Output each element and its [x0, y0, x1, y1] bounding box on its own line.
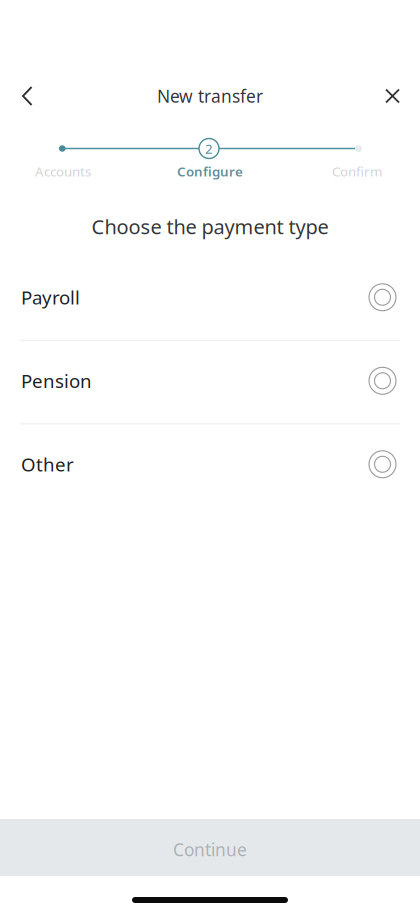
button[interactable]: Back: [0, 74, 45, 118]
button[interactable]: Continue: [0, 819, 420, 876]
staticText: New transfer: [157, 84, 263, 107]
staticText: Continue: [173, 838, 247, 861]
button[interactable]: Other: [0, 421, 420, 504]
staticText: Pension: [21, 368, 92, 393]
staticText: Confirm: [332, 162, 382, 180]
staticText: Configure: [177, 162, 243, 180]
staticText: Accounts: [35, 162, 91, 180]
staticText: Payroll: [21, 285, 80, 310]
button[interactable]: Payroll: [0, 254, 420, 337]
staticText: Other: [21, 452, 74, 477]
staticText: Choose the payment type: [91, 213, 328, 240]
button[interactable]: Pension: [0, 337, 420, 421]
staticText: 2: [205, 140, 213, 157]
button[interactable]: Close: [369, 73, 420, 118]
